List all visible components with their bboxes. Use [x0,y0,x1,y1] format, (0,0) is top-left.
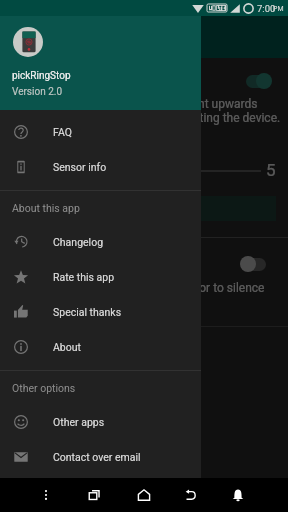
staticText: Cover the proximity sensor to silence [68,281,265,295]
button[interactable]: Special thanks [0,294,201,329]
staticText: Rate this app [53,271,115,283]
staticText: Other options [12,382,76,394]
button[interactable]: Notifications [221,478,255,512]
staticText: Version 2.0 [12,86,63,98]
button[interactable]: Recent apps [77,478,111,512]
staticText: Turn the phone upside down to stop the r… [0,97,258,111]
staticText: Special thanks [53,306,122,318]
staticText: FAQ [53,126,72,138]
button[interactable]: Contact over email [0,439,201,474]
button[interactable]: Back [174,478,208,512]
staticText: Sensor info [53,161,107,173]
staticText: About [53,341,81,353]
button[interactable]: About [0,329,201,364]
button[interactable]: Rate this app [0,259,201,294]
button[interactable]: Home [127,478,161,512]
staticText: Changelog [53,236,104,248]
staticText: pickRingStop [12,70,71,82]
button[interactable]: FAQ [0,114,201,149]
button[interactable]: More options [29,478,63,512]
staticText: PM [273,5,284,13]
staticText: 5 [266,160,276,180]
staticText: Other apps [53,416,105,428]
button[interactable]: Changelog [0,224,201,259]
staticText: Contact over email [53,451,141,463]
staticText: to silence an incoming call simply by ti… [0,111,281,125]
staticText: About this app [12,202,80,214]
other: App icon [13,27,43,57]
button[interactable]: Other apps [0,404,201,439]
staticText: 7:00 [257,3,276,14]
button[interactable]: Sensor info [0,149,201,184]
